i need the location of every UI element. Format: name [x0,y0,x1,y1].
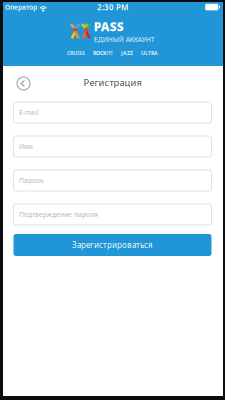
staticText: ROCK!!! [93,49,113,56]
staticText: PASS [94,19,124,34]
staticText: Регистрация [83,76,141,89]
staticText: ЕДИНЫЙ АККАУНТ [94,35,155,44]
staticText: Зарегистрироваться [72,240,153,250]
staticText: Имя [19,142,33,151]
staticText: E-mail [19,108,39,117]
staticText: Пароль [19,176,44,185]
staticText: CRUISE [67,49,85,56]
button[interactable]: Back [10,68,36,94]
button[interactable]: Зарегистрироваться [13,234,211,256]
staticText: ULTRA [141,49,158,56]
staticText: Оператор [5,3,37,11]
staticText: Подтверждение пароля [19,210,98,219]
staticText: JAZZ [121,49,133,56]
staticText: 2:30 PM [97,2,128,12]
